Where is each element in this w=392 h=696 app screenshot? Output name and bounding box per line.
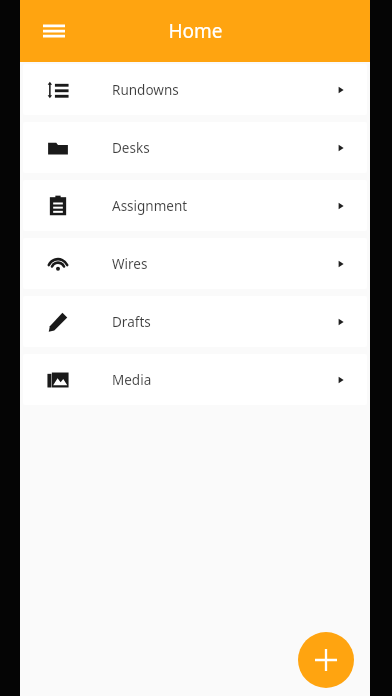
staticText: Media [112, 371, 152, 389]
staticText: Wires [112, 255, 148, 273]
button[interactable]: Rundowns [23, 64, 367, 115]
button[interactable]: Add [298, 632, 354, 688]
staticText: Desks [112, 139, 150, 157]
staticText: Assignment [112, 197, 188, 215]
button[interactable]: Assignment [23, 180, 367, 231]
staticText: Rundowns [112, 81, 179, 99]
button[interactable]: Drafts [23, 296, 367, 347]
button[interactable]: Desks [23, 122, 367, 173]
staticText: Home [168, 18, 223, 44]
staticText: Drafts [112, 313, 151, 331]
button[interactable]: Wires [23, 238, 367, 289]
button[interactable]: Media [23, 354, 367, 405]
button[interactable]: Open navigation menu [32, 9, 76, 53]
